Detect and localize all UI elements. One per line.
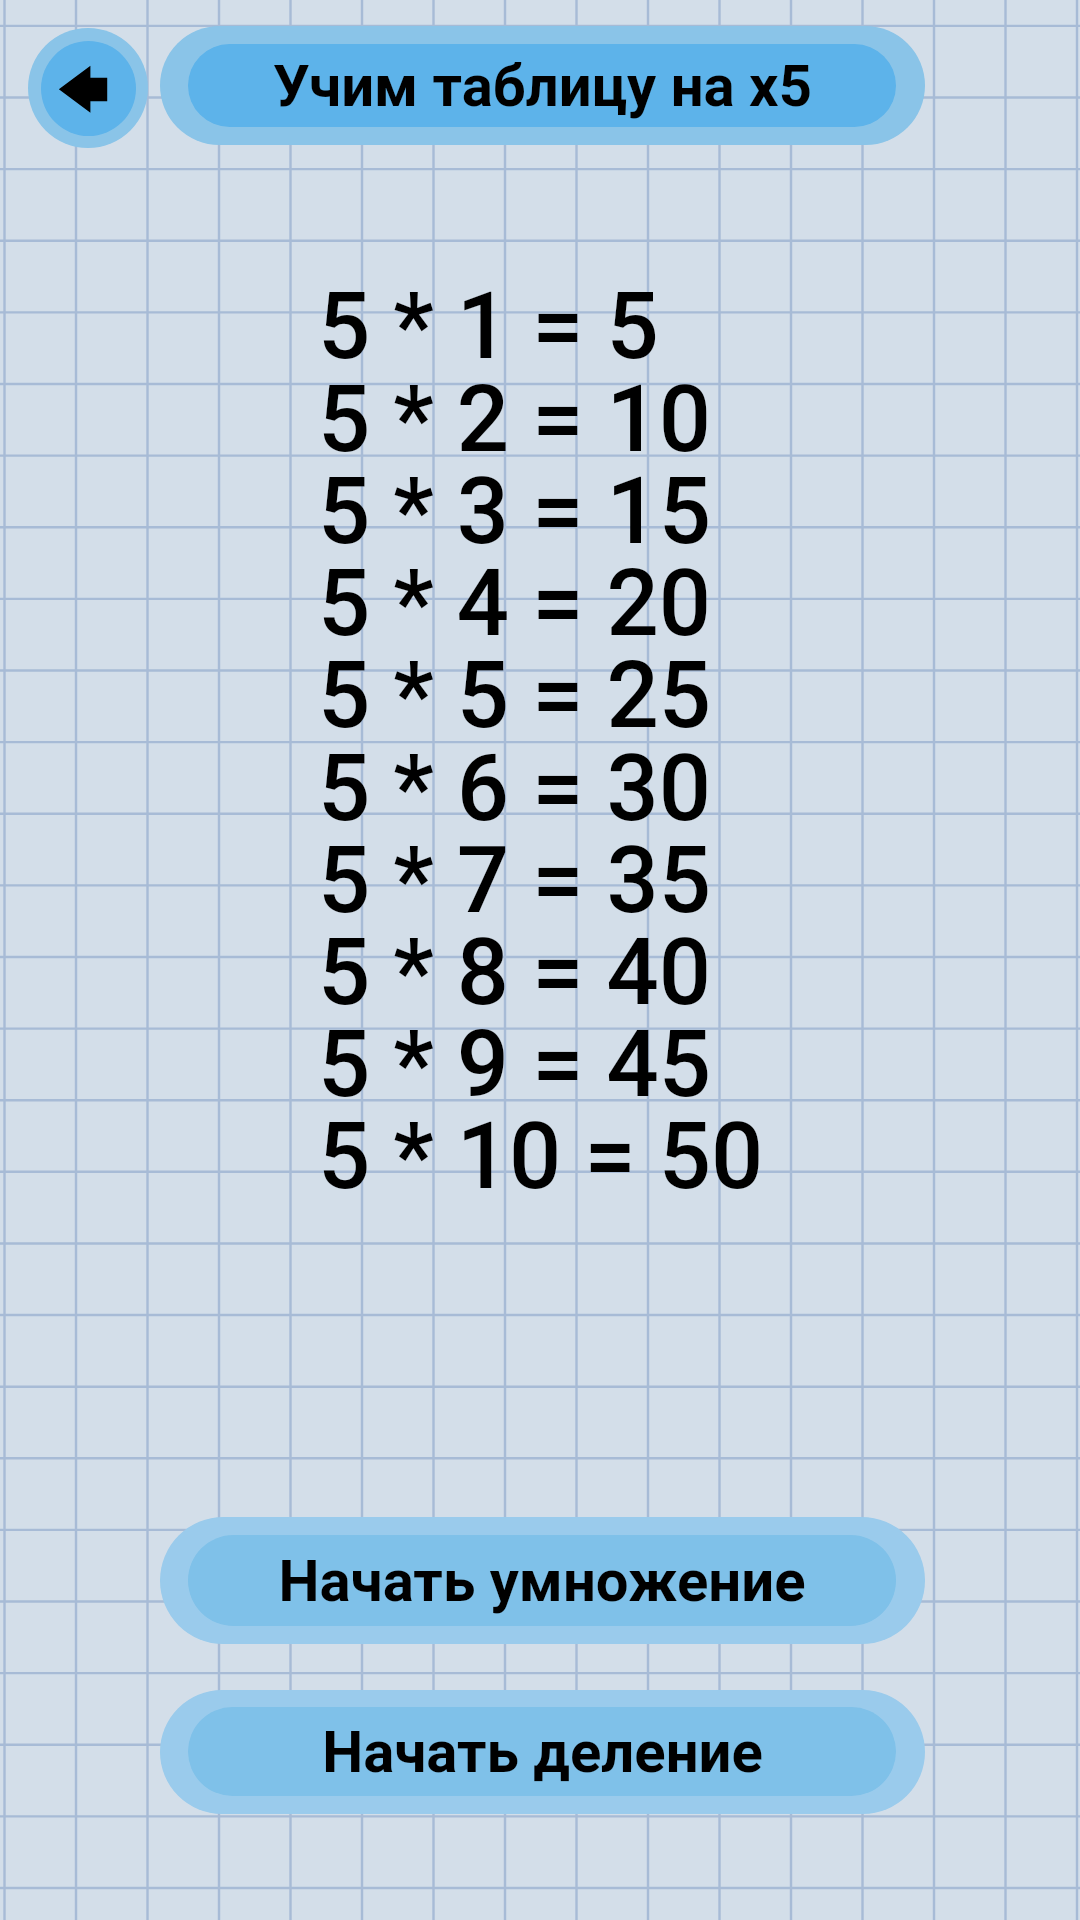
button[interactable]: Начать умножение — [160, 1517, 925, 1644]
button[interactable]: Учим таблицу на x5 — [160, 26, 925, 145]
button[interactable]: Начать деление — [160, 1690, 925, 1814]
staticText: 5 * 1 = 5 — [318, 273, 659, 381]
staticText: 5 * 8 = 40 — [318, 919, 711, 1027]
staticText: 5 * 7 = 35 — [318, 827, 711, 935]
staticText: Учим таблицу на x5 — [273, 52, 812, 120]
staticText: 5 * 6 = 30 — [318, 735, 711, 843]
staticText: 5 * 10 = 50 — [318, 1103, 764, 1211]
staticText: 5 * 2 = 10 — [318, 366, 711, 474]
staticText: 5 * 3 = 15 — [318, 458, 711, 566]
staticText: 5 * 5 = 25 — [318, 642, 711, 750]
staticText: Начать деление — [322, 1718, 763, 1786]
staticText: 5 * 4 = 20 — [318, 550, 711, 658]
button[interactable]: Back — [28, 28, 148, 148]
staticText: Начать умножение — [278, 1547, 806, 1615]
staticText: 5 * 9 = 45 — [318, 1011, 711, 1119]
